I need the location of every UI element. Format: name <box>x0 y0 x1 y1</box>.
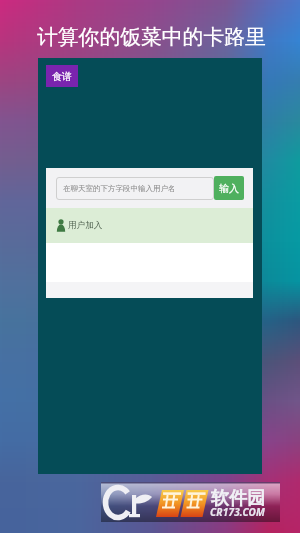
button[interactable]: 输入 <box>214 176 244 200</box>
staticText: 输入 <box>219 182 239 195</box>
button[interactable]: 食谱 <box>46 65 78 87</box>
staticText: 在聊天室的下方字段中输入用户名 <box>63 184 176 193</box>
staticText: 计算你的饭菜中的卡路里 <box>37 24 266 50</box>
staticText: 软件园 <box>211 487 265 510</box>
staticText: CR173.COM <box>210 505 266 519</box>
staticText: 食谱 <box>52 70 72 83</box>
staticText: 用户加入 <box>68 220 103 231</box>
